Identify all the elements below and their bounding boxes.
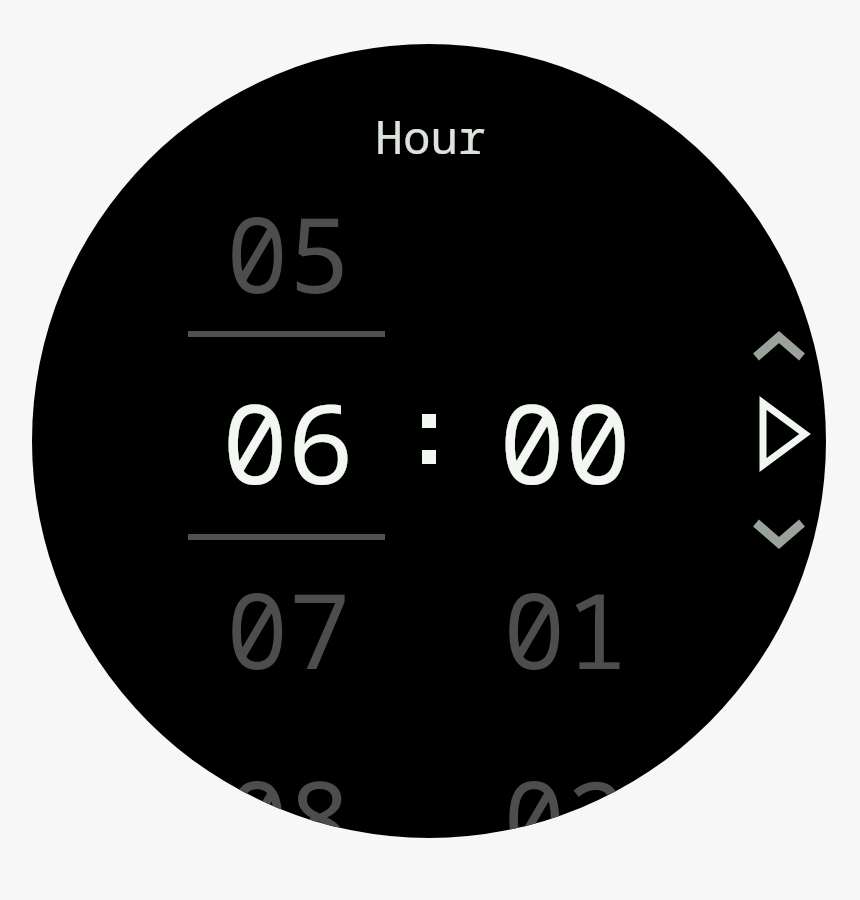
staticText: Hour bbox=[375, 105, 486, 165]
button[interactable]: Minute 0, selected bbox=[470, 347, 660, 535]
staticText: 06 bbox=[222, 366, 354, 516]
button[interactable]: Hour 6, selected bbox=[193, 347, 383, 535]
button[interactable]: Hour 5 bbox=[193, 159, 383, 347]
button[interactable]: Minute 2 bbox=[470, 723, 660, 838]
button[interactable]: Hour 7 bbox=[193, 535, 383, 723]
staticText: 05 bbox=[226, 182, 351, 324]
button[interactable]: Next field bbox=[747, 391, 821, 477]
button[interactable]: Minute 1 bbox=[470, 535, 660, 723]
staticText: 01 bbox=[503, 558, 628, 700]
staticText: 07 bbox=[226, 558, 351, 700]
staticText: 00 bbox=[499, 366, 631, 516]
button[interactable]: Next value bbox=[743, 506, 815, 560]
staticText: 08 bbox=[226, 746, 351, 838]
button[interactable]: Hour 8 bbox=[193, 723, 383, 838]
button[interactable]: Previous value bbox=[743, 320, 815, 374]
staticText: 02 bbox=[503, 746, 628, 838]
